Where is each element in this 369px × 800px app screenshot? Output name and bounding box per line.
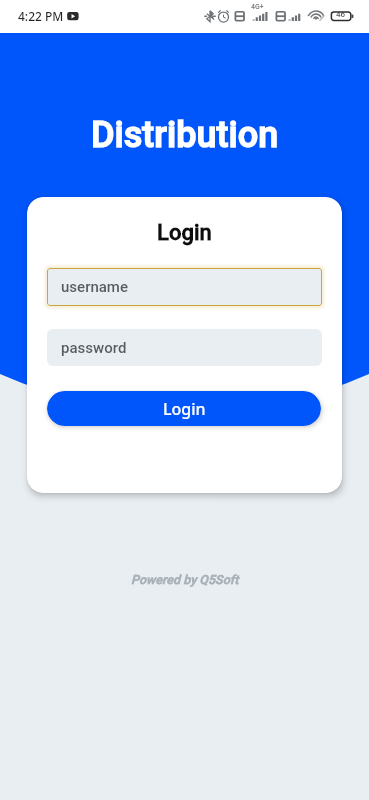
button[interactable]: password [47, 329, 322, 366]
staticText: Login [163, 398, 206, 420]
staticText: 46 [336, 10, 346, 19]
staticText: Login [157, 220, 212, 246]
button[interactable]: Login [47, 391, 321, 426]
staticText: username [61, 278, 128, 296]
staticText: Distribution [91, 114, 279, 156]
staticText: password [61, 339, 127, 357]
staticText: 4:22 PM [18, 8, 64, 24]
staticText: 4G+ [251, 3, 264, 11]
button[interactable]: username [47, 268, 322, 306]
staticText: Powered by Q5Soft [131, 572, 239, 587]
